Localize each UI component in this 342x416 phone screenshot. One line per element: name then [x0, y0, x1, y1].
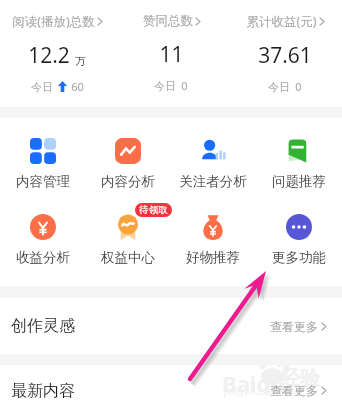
button[interactable]: 内容管理 — [0, 138, 85, 190]
staticText: 累计收益(元) — [246, 13, 317, 30]
staticText: 赞同总数 — [143, 13, 193, 29]
button[interactable]: 内容分析 — [85, 138, 170, 190]
staticText: 更多功能 — [272, 249, 326, 266]
staticText: 阅读(播放)总数 — [12, 13, 95, 30]
button[interactable]: 待领取 — [85, 214, 170, 266]
button[interactable]: 阅读(播放)总数 — [0, 0, 114, 94]
staticText: 60 — [71, 79, 84, 94]
staticText: 37.61 — [258, 41, 312, 70]
staticText: 内容管理 — [16, 173, 70, 190]
staticText: 查看更多 — [270, 383, 318, 398]
button[interactable]: 更多功能 — [256, 214, 342, 266]
staticText: 待领取 — [139, 204, 168, 216]
staticText: 收益分析 — [16, 249, 70, 266]
staticText: jingyan.baidu.com — [224, 385, 302, 397]
staticText: 今日 — [268, 80, 290, 94]
staticText: 0 — [295, 79, 302, 94]
button[interactable]: 赞同总数 — [114, 0, 228, 93]
button[interactable]: 收益分析 — [0, 214, 85, 266]
staticText: 关注者分析 — [179, 173, 247, 190]
staticText: 内容分析 — [101, 173, 155, 190]
button[interactable]: 关注者分析 — [170, 138, 256, 190]
staticText: 好物推荐 — [186, 249, 240, 266]
staticText: 万 — [75, 54, 86, 68]
staticText: 创作灵感 — [11, 316, 75, 336]
staticText: 权益中心 — [101, 249, 155, 266]
staticText: 最新内容 — [11, 381, 75, 401]
staticText: 问题推荐 — [272, 173, 326, 190]
staticText: 12.2 — [28, 41, 70, 70]
staticText: Baidu — [222, 368, 285, 398]
staticText: 0 — [181, 78, 188, 93]
staticText: 今日 — [31, 80, 53, 94]
staticText: 今日 — [154, 79, 176, 93]
staticText: 11 — [159, 40, 184, 69]
staticText: 查看更多 — [270, 319, 318, 334]
staticText: 经验 — [280, 366, 320, 391]
button[interactable]: 最新内容 — [0, 365, 342, 416]
button[interactable]: 好物推荐 — [170, 214, 256, 266]
button[interactable]: 累计收益(元) — [228, 0, 342, 94]
button[interactable]: 创作灵感 — [0, 298, 342, 354]
button[interactable]: 问题推荐 — [256, 138, 342, 190]
